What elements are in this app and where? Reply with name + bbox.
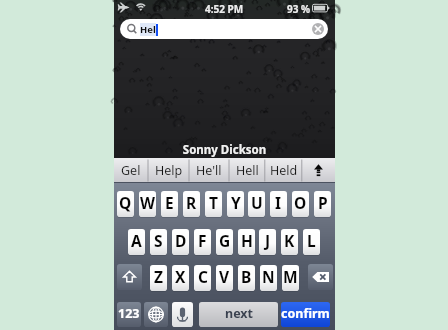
staticText: T xyxy=(209,192,218,213)
button[interactable]: A xyxy=(128,229,145,255)
button[interactable]: J xyxy=(259,229,276,255)
staticText: 123 xyxy=(118,305,140,322)
staticText: L xyxy=(307,230,316,251)
staticText: A xyxy=(131,230,142,251)
button[interactable]: Gel xyxy=(114,158,148,183)
staticText: 93 % xyxy=(287,2,311,16)
button[interactable]: B xyxy=(238,265,255,291)
staticText: J xyxy=(265,230,271,251)
button[interactable]: N xyxy=(260,265,277,291)
staticText: M xyxy=(283,266,298,287)
button[interactable]: Expand suggestions xyxy=(302,158,335,183)
staticText: Q xyxy=(119,192,132,213)
staticText: W xyxy=(140,192,155,213)
button[interactable]: C xyxy=(194,265,211,291)
staticText: B xyxy=(241,266,252,287)
button[interactable]: Search field xyxy=(120,19,328,39)
button[interactable]: next xyxy=(199,302,278,327)
button[interactable]: I xyxy=(270,191,287,217)
staticText: U xyxy=(251,192,263,213)
staticText: O xyxy=(294,192,307,213)
button[interactable]: V xyxy=(216,265,233,291)
staticText: G xyxy=(219,230,231,251)
staticText: Y xyxy=(231,192,241,213)
button[interactable]: Voice input xyxy=(172,302,193,327)
button[interactable]: D xyxy=(172,229,189,255)
button[interactable]: H xyxy=(238,229,255,255)
staticText: He'll xyxy=(196,162,222,179)
button[interactable]: Backspace xyxy=(308,264,333,290)
button[interactable]: Hell xyxy=(229,158,265,183)
button[interactable]: O xyxy=(292,191,309,217)
staticText: Z xyxy=(154,266,163,287)
staticText: Held xyxy=(270,162,298,179)
button[interactable]: R xyxy=(183,191,200,217)
staticText: Hel xyxy=(140,23,156,36)
staticText: R xyxy=(186,192,197,213)
button[interactable]: Clear xyxy=(312,23,324,35)
staticText: Sonny Dickson xyxy=(114,142,335,158)
button[interactable]: M xyxy=(282,265,299,291)
staticText: X xyxy=(175,266,186,287)
button[interactable]: 123 xyxy=(117,302,141,327)
staticText: D xyxy=(175,230,187,251)
button[interactable]: X xyxy=(172,265,189,291)
staticText: confirm xyxy=(281,305,330,322)
button[interactable]: T xyxy=(205,191,222,217)
button[interactable]: Y xyxy=(227,191,244,217)
button[interactable]: confirm xyxy=(281,302,330,327)
button[interactable]: Z xyxy=(150,265,167,291)
button[interactable]: S xyxy=(150,229,167,255)
staticText: 4:52 PM xyxy=(205,2,244,16)
button[interactable]: K xyxy=(281,229,298,255)
staticText: N xyxy=(262,266,275,287)
staticText: next xyxy=(225,305,253,322)
button[interactable]: Held xyxy=(265,158,302,183)
button[interactable]: W xyxy=(139,191,156,217)
staticText: S xyxy=(154,230,163,251)
button[interactable]: Help xyxy=(148,158,189,183)
button[interactable]: L xyxy=(303,229,320,255)
staticText: H xyxy=(241,230,253,251)
staticText: V xyxy=(219,266,230,287)
button[interactable]: U xyxy=(248,191,265,217)
button[interactable]: Q xyxy=(117,191,134,217)
button[interactable]: Shift xyxy=(117,264,142,290)
staticText: P xyxy=(318,192,328,213)
staticText: E xyxy=(165,192,174,213)
button[interactable]: P xyxy=(314,191,331,217)
button[interactable]: He'll xyxy=(189,158,229,183)
button[interactable]: Switch keyboard language xyxy=(144,302,168,327)
staticText: K xyxy=(284,230,295,251)
button[interactable]: F xyxy=(194,229,211,255)
staticText: Gel xyxy=(121,162,141,179)
button[interactable]: E xyxy=(161,191,178,217)
staticText: Help xyxy=(155,162,183,179)
button[interactable]: G xyxy=(216,229,233,255)
staticText: I xyxy=(275,192,282,213)
staticText: F xyxy=(198,230,207,251)
staticText: Hell xyxy=(236,162,259,179)
staticText: C xyxy=(198,266,208,287)
